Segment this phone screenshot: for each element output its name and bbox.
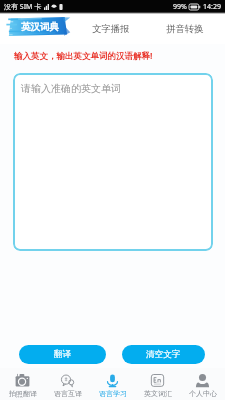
staticText: 翻译: [54, 349, 72, 360]
button[interactable]: Language learning: [90, 368, 135, 400]
staticText: 个人中心: [189, 389, 217, 398]
staticText: 拍照翻译: [9, 389, 37, 398]
button[interactable]: English vocabulary: [135, 368, 180, 400]
staticText: 清空文字: [146, 349, 181, 360]
button[interactable]: Language translate: [45, 368, 90, 400]
button[interactable]: 英汉词典: [7, 17, 69, 36]
button[interactable]: 清空文字: [122, 345, 205, 364]
staticText: 没有 SIM 卡: [4, 2, 42, 12]
button[interactable]: Photo translate: [0, 368, 45, 400]
staticText: 语言互译: [54, 389, 82, 398]
staticText: 英汉词典: [21, 21, 59, 33]
button[interactable]: 拼音转换: [160, 18, 210, 40]
staticText: 99%: [173, 2, 187, 12]
button[interactable]: 文字播报: [86, 18, 136, 40]
staticText: 文字播报: [92, 23, 130, 35]
button[interactable]: 翻译: [19, 345, 106, 364]
staticText: 输入英文，输出英文单词的汉语解释!: [14, 50, 153, 62]
button[interactable]: Profile: [180, 368, 225, 400]
staticText: 请输入准确的英文单词: [21, 82, 121, 95]
staticText: 14:29: [203, 2, 221, 12]
staticText: 语言学习: [99, 389, 127, 398]
staticText: 拼音转换: [166, 23, 204, 35]
staticText: 英文词汇: [144, 389, 172, 398]
